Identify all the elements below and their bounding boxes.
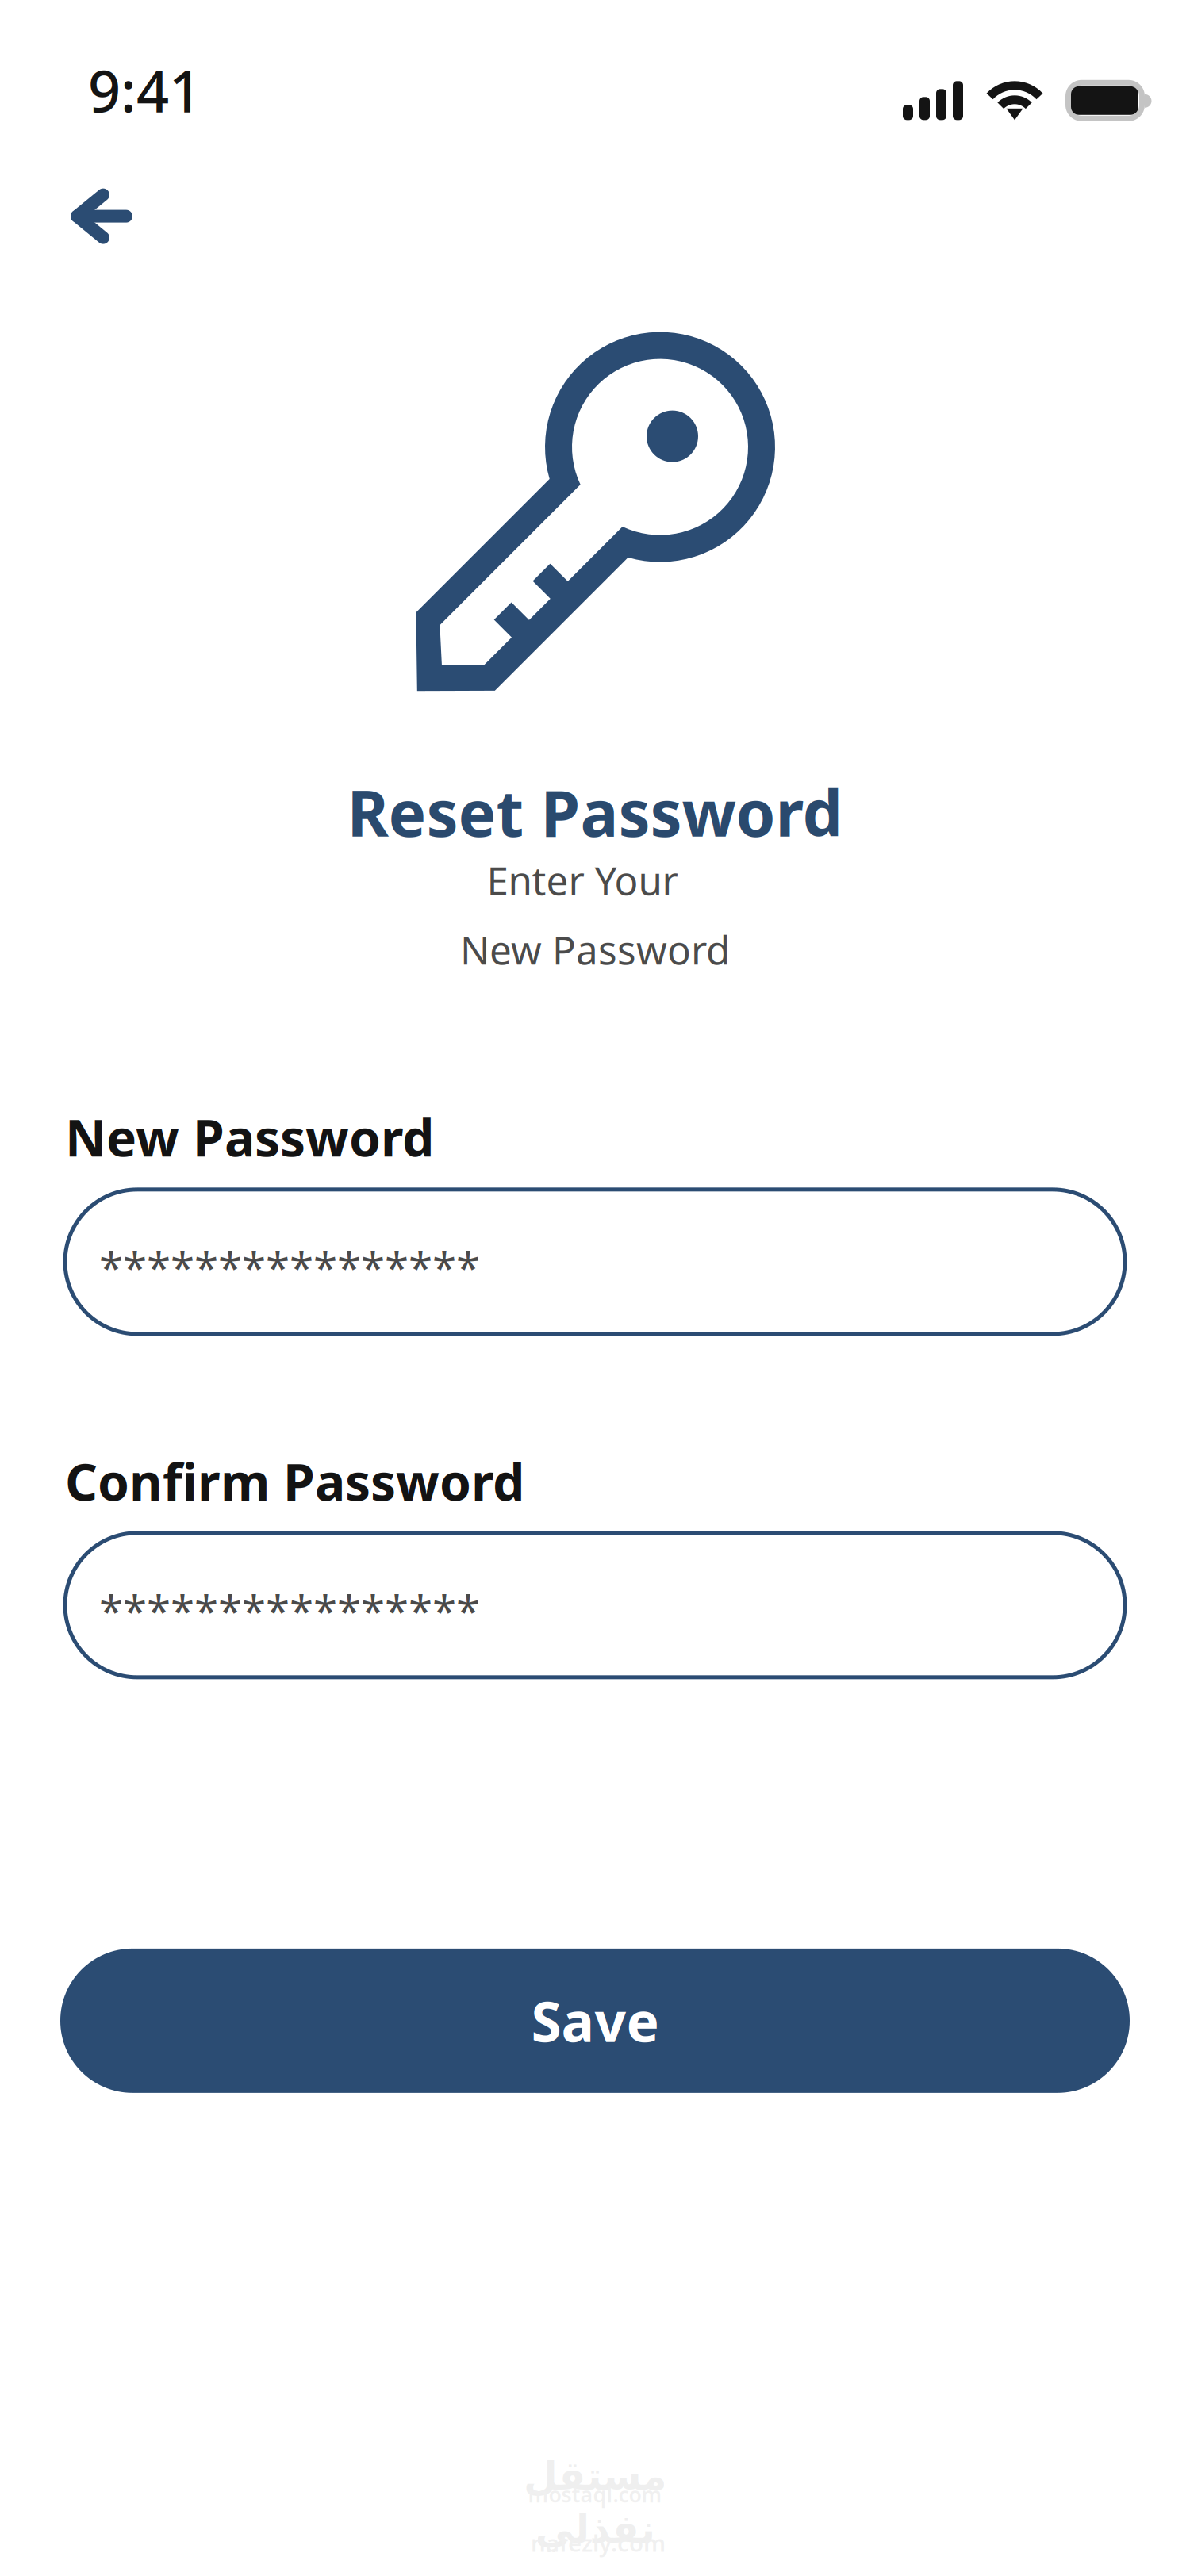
- staticText: ****************: [99, 1239, 480, 1296]
- button[interactable]: Save: [60, 1949, 1130, 2093]
- staticText: mostaql.com: [528, 2480, 662, 2508]
- staticText: 9:41: [88, 52, 202, 128]
- button[interactable]: ****************: [65, 1190, 1125, 1334]
- staticText: نفذلي: [535, 2507, 655, 2551]
- staticText: Confirm Password: [65, 1447, 524, 1515]
- staticText: Save: [531, 1984, 659, 2057]
- staticText: ****************: [99, 1582, 480, 1640]
- staticText: Enter Your: [487, 854, 678, 906]
- staticText: Reset Password: [347, 770, 843, 854]
- button[interactable]: Back: [70, 188, 133, 245]
- button[interactable]: ****************: [65, 1533, 1125, 1677]
- staticText: New Password: [65, 1103, 434, 1171]
- staticText: nafezly.com: [531, 2527, 666, 2558]
- staticText: New Password: [460, 923, 730, 975]
- staticText: مستقل: [523, 2454, 667, 2498]
